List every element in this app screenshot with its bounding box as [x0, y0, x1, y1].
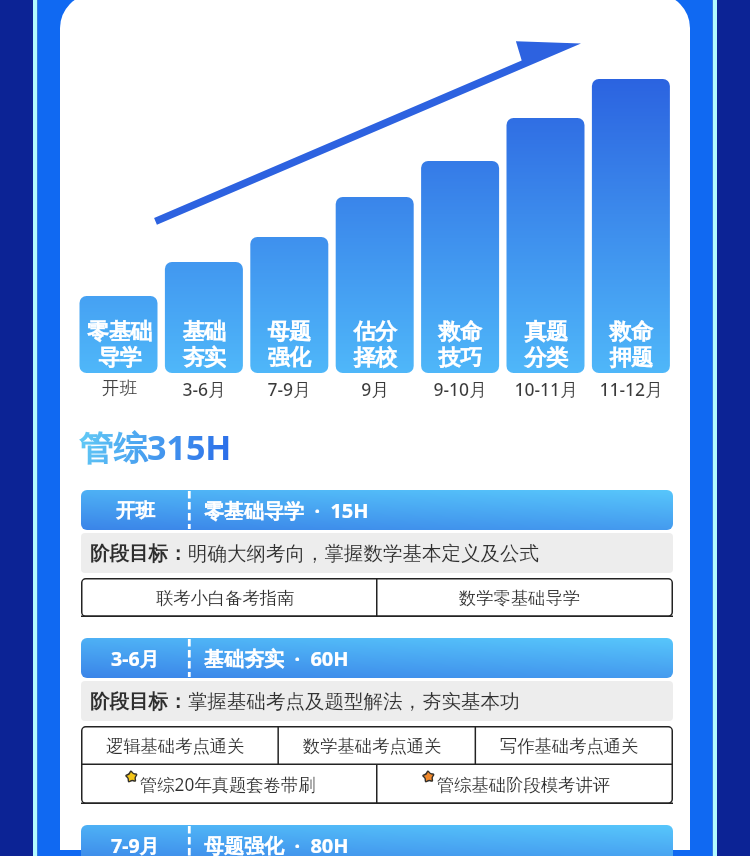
staticText: 开班 [116, 498, 155, 523]
staticText: 数学零基础导学 [459, 587, 581, 609]
staticText: 11-12月 [599, 377, 663, 399]
staticText: 数学基础考点通关 [303, 735, 442, 757]
button[interactable]: 逻辑基础考点通关 [81, 726, 278, 765]
staticText: 管综20年真题套卷带刷 [140, 773, 316, 797]
button[interactable]: 数学基础考点通关 [278, 726, 475, 765]
button[interactable]: 开班 [81, 490, 673, 530]
staticText: 10-11月 [514, 377, 578, 399]
staticText: 真题 分类 [524, 318, 568, 371]
button[interactable]: 7-9月 [81, 825, 673, 856]
staticText: 零基础 导学 [87, 318, 152, 371]
staticText: 开班 [102, 377, 137, 399]
staticText: 估分 择校 [353, 318, 397, 371]
staticText: 7-9月 [111, 832, 160, 856]
staticText: 管综基础阶段模考讲评 [437, 774, 610, 796]
staticText: 逻辑基础考点通关 [106, 735, 245, 757]
staticText: 管综315H [79, 424, 232, 470]
staticText: 联考小白备考指南 [156, 587, 295, 609]
staticText: 救命 技巧 [438, 318, 482, 371]
staticText: 基础 夯实 [182, 318, 226, 371]
button[interactable]: 数学零基础导学 [376, 578, 672, 617]
staticText: 9月 [361, 377, 389, 399]
staticText: 7-9月 [267, 377, 311, 399]
staticText: 3-6月 [182, 377, 226, 399]
staticText: 掌握基础考点及题型解法，夯实基本功 [188, 689, 520, 714]
staticText: 3-6月 [111, 645, 160, 672]
staticText: 阶段目标： [90, 689, 188, 714]
staticText: 明确大纲考向，掌握数学基本定义及公式 [188, 541, 539, 566]
staticText: 母题 强化 [267, 318, 311, 371]
button[interactable]: 写作基础考点通关 [475, 726, 672, 765]
staticText: 零基础导学 · 15H [204, 497, 369, 524]
staticText: 救命 押题 [609, 318, 653, 371]
staticText: 写作基础考点通关 [500, 735, 639, 757]
staticText: 阶段目标： [90, 541, 188, 566]
staticText: 9-10月 [433, 377, 487, 399]
button[interactable]: 管综20年真题套卷带刷 [81, 765, 377, 804]
staticText: 母题强化 · 80H [204, 832, 349, 856]
button[interactable]: 管综基础阶段模考讲评 [376, 765, 672, 804]
button[interactable]: 联考小白备考指南 [81, 578, 377, 617]
staticText: 基础夯实 · 60H [204, 645, 349, 672]
button[interactable]: 3-6月 [81, 638, 673, 678]
